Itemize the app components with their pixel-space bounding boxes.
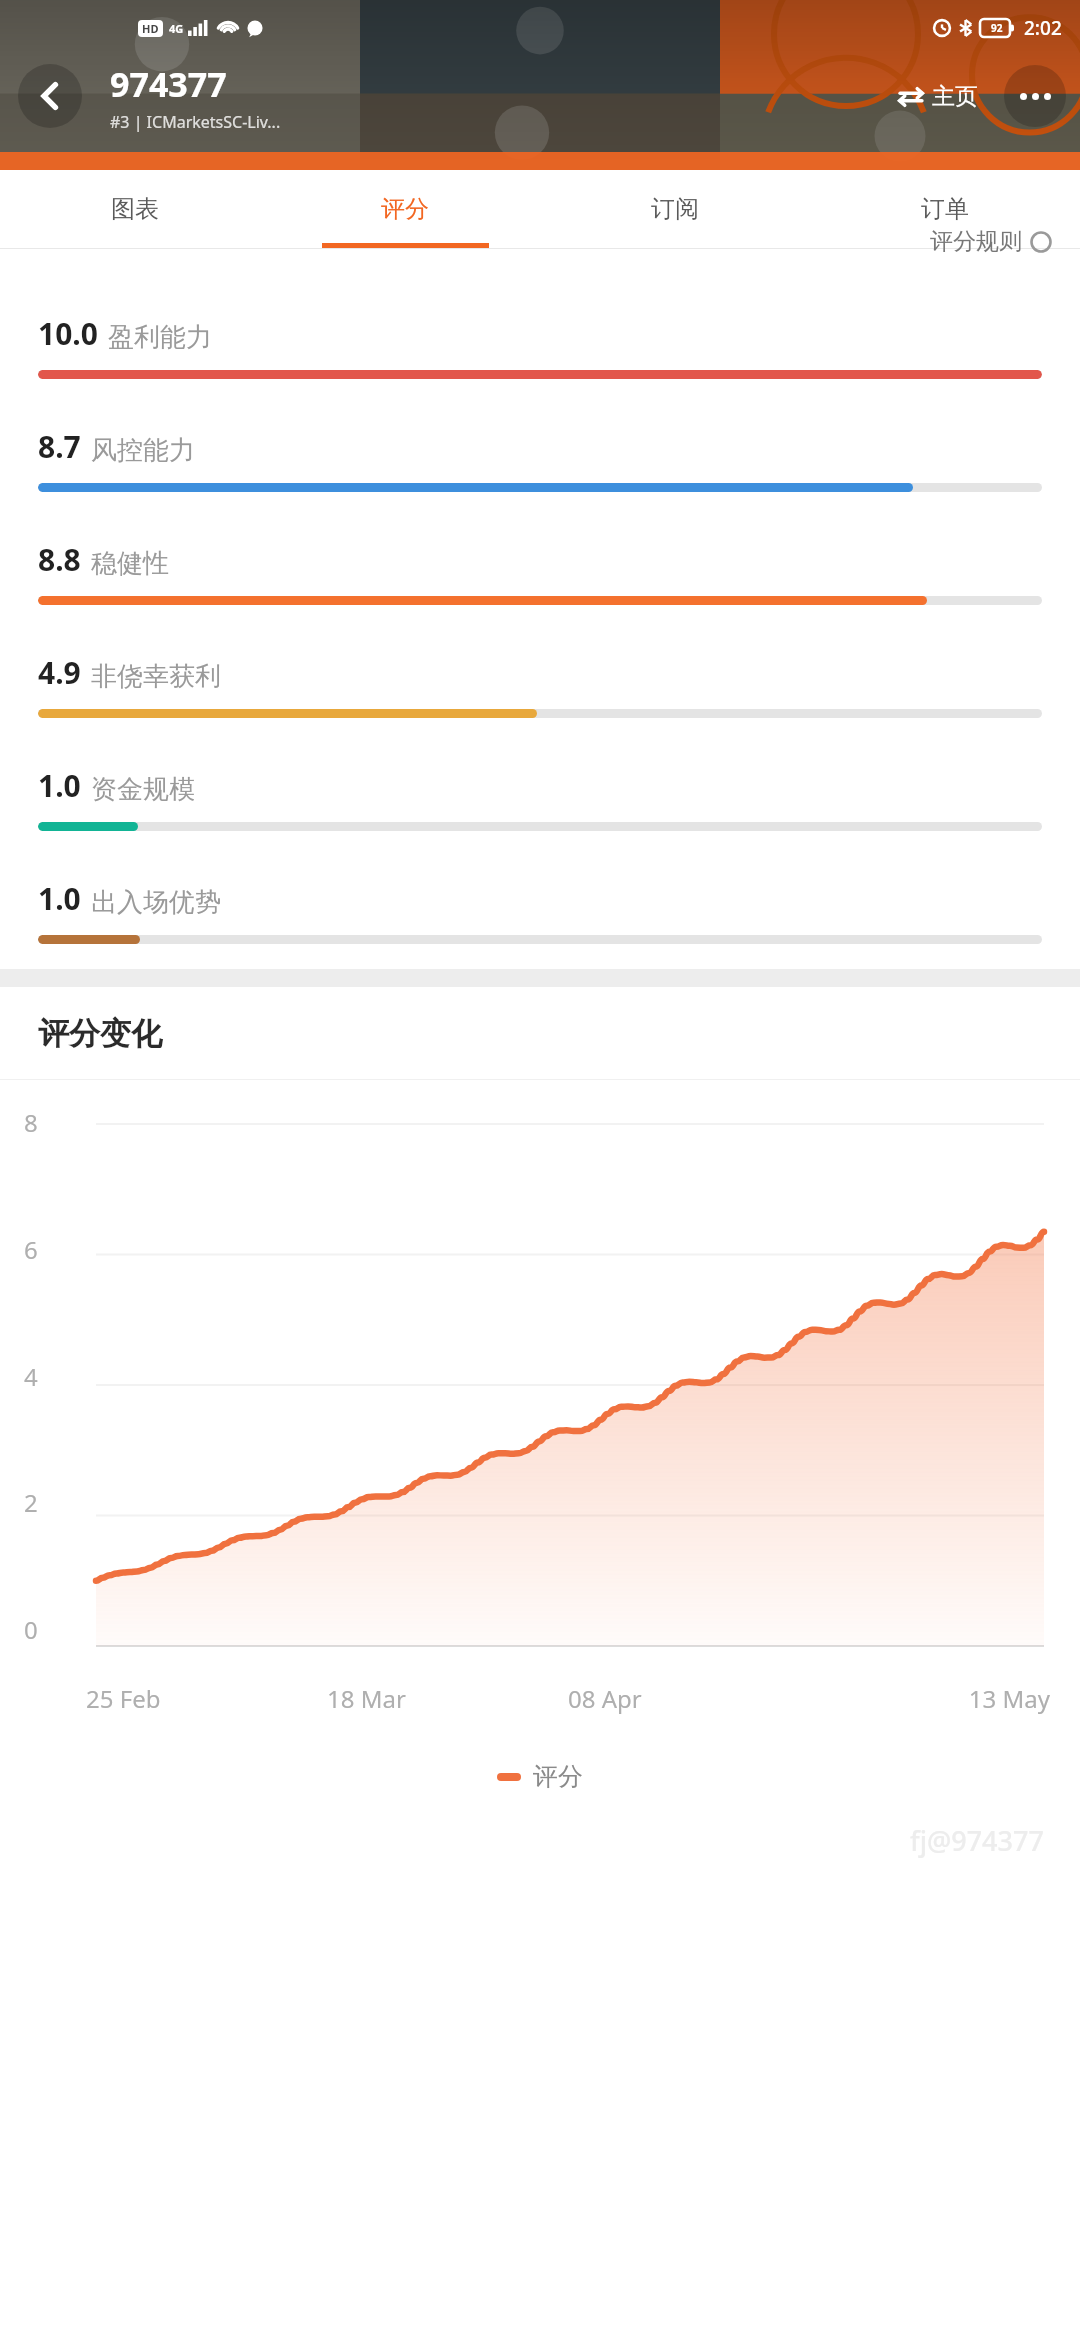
staticText: 25 Feb (86, 1682, 327, 1715)
button[interactable]: 订单 (810, 170, 1080, 248)
button[interactable]: More options (1004, 65, 1066, 127)
staticText: 盈利能力 (108, 321, 212, 354)
staticText: 出入场优势 (91, 886, 221, 919)
button[interactable]: 评分 (270, 170, 540, 248)
staticText: 图表 (111, 194, 159, 224)
staticText: 2 (24, 1486, 38, 1519)
staticText: 8.7 (38, 426, 81, 467)
staticText: #3 | ICMarketsSC-Liv... (110, 111, 281, 133)
staticText: 6 (24, 1233, 38, 1266)
staticText: 评分 (381, 194, 429, 224)
staticText: 非侥幸获利 (91, 660, 221, 693)
staticText: 8.8 (38, 539, 81, 580)
staticText: 4.9 (38, 652, 81, 693)
button[interactable]: 主页 (892, 76, 984, 117)
staticText: HD (142, 21, 159, 36)
staticText: 评分变化 (38, 1014, 162, 1053)
button[interactable]: Back (18, 64, 82, 128)
staticText: 4G (169, 21, 184, 36)
staticText: 订单 (921, 194, 969, 224)
staticText: 18 Mar (327, 1682, 568, 1715)
staticText: 评分规则 (930, 227, 1022, 256)
button[interactable]: 图表 (0, 170, 270, 248)
staticText: 2:02 (1024, 15, 1062, 41)
staticText: 08 Apr (568, 1682, 809, 1715)
staticText: 0 (24, 1613, 38, 1646)
staticText: 4 (24, 1360, 38, 1393)
button[interactable]: 订阅 (540, 170, 810, 248)
staticText: 974377 (110, 61, 227, 107)
staticText: 8 (24, 1106, 38, 1139)
staticText: 1.0 (38, 878, 81, 919)
staticText: 稳健性 (91, 547, 169, 580)
staticText: 评分 (533, 1761, 583, 1792)
staticText: 13 May (809, 1682, 1050, 1715)
staticText: 92 (991, 21, 1003, 35)
staticText: 1.0 (38, 765, 81, 806)
staticText: fj@974377 (910, 1822, 1044, 1859)
staticText: 风控能力 (91, 434, 195, 467)
staticText: 订阅 (651, 194, 699, 224)
staticText: 资金规模 (91, 773, 195, 806)
staticText: 10.0 (38, 313, 98, 354)
staticText: 主页 (932, 82, 978, 111)
